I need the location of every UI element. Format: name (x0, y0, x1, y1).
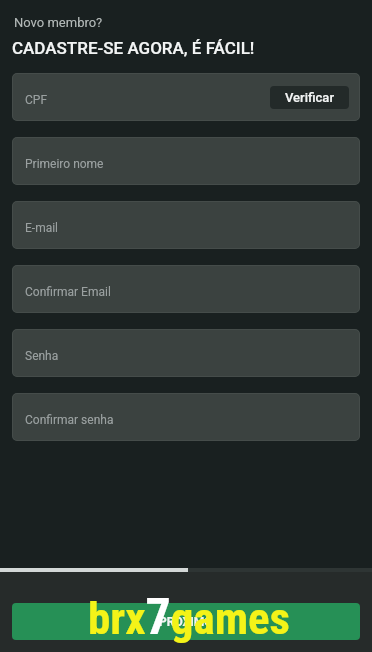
staticText: Verificar (285, 90, 334, 105)
staticText: Confirmar senha (25, 413, 114, 427)
staticText: PRÓXIMO (159, 615, 213, 629)
staticText: Confirmar Email (25, 285, 111, 299)
staticText: brx7games (88, 588, 290, 647)
staticText: Novo membro? (14, 15, 103, 30)
button[interactable]: CPF (12, 73, 360, 121)
button[interactable]: Senha (12, 329, 360, 377)
button[interactable]: Confirmar Email (12, 265, 360, 313)
staticText: CADASTRE-SE AGORA, É FÁCIL! (12, 38, 255, 58)
button[interactable]: Primeiro nome (12, 137, 360, 185)
staticText: Senha (25, 349, 59, 363)
button[interactable]: Verificar (270, 86, 349, 109)
staticText: E-mail (25, 221, 59, 235)
staticText: CPF (25, 93, 48, 107)
button[interactable]: PRÓXIMO (12, 603, 360, 640)
button[interactable]: E-mail (12, 201, 360, 249)
staticText: Primeiro nome (25, 157, 104, 171)
button[interactable]: Confirmar senha (12, 393, 360, 441)
